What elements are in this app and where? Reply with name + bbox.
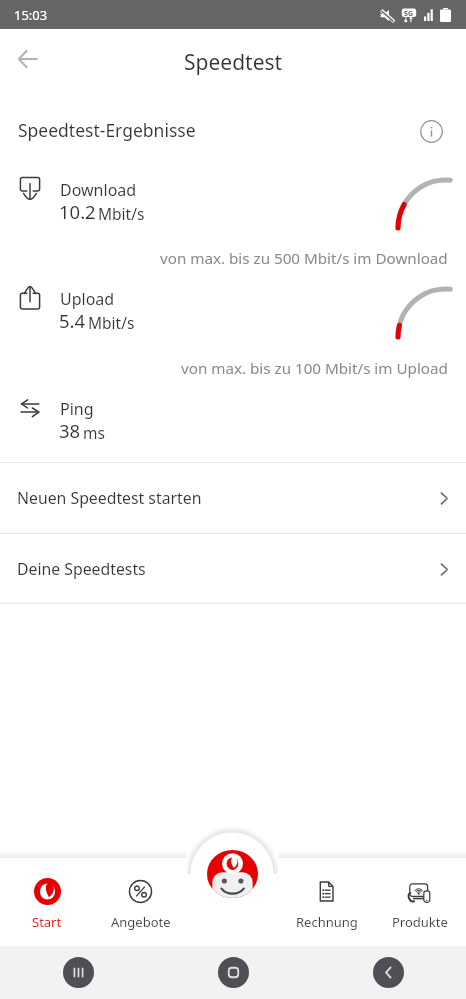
staticText: Speedtest xyxy=(184,48,283,77)
staticText: 10.2 xyxy=(59,199,96,224)
staticText: Deine Speedtests xyxy=(17,558,146,580)
staticText: Start xyxy=(32,913,62,931)
button[interactable]: Angebote xyxy=(94,858,187,946)
staticText: 5.4 xyxy=(59,308,86,333)
staticText: Mbit/s xyxy=(98,203,145,224)
button[interactable]: Back xyxy=(8,39,48,79)
button[interactable]: Home xyxy=(218,957,249,988)
staticText: Ping xyxy=(60,398,94,420)
staticText: 15:03 xyxy=(14,6,48,24)
staticText: Upload xyxy=(60,288,115,310)
staticText: Angebote xyxy=(111,913,171,931)
button[interactable]: Produkte xyxy=(373,858,466,946)
button[interactable]: Info xyxy=(414,114,448,148)
staticText: 5G xyxy=(404,9,414,19)
staticText: Rechnung xyxy=(296,913,358,931)
staticText: Speedtest-Ergebnisse xyxy=(18,118,196,142)
staticText: Download xyxy=(60,179,137,201)
staticText: Mbit/s xyxy=(88,312,135,333)
button[interactable]: Neuen Speedtest starten xyxy=(0,463,466,533)
staticText: ms xyxy=(83,422,105,443)
staticText: 38 xyxy=(59,418,81,443)
staticText: von max. bis zu 100 Mbit/s im Upload xyxy=(181,358,448,379)
staticText: Produkte xyxy=(392,913,448,931)
staticText: von max. bis zu 500 Mbit/s im Download xyxy=(160,248,448,269)
button[interactable]: TOBi Chat xyxy=(191,833,273,915)
button[interactable]: Rechnung xyxy=(280,858,373,946)
staticText: Neuen Speedtest starten xyxy=(17,487,202,509)
button[interactable]: Recent apps xyxy=(63,957,94,988)
button[interactable]: Deine Speedtests xyxy=(0,534,466,604)
button[interactable]: Start xyxy=(0,858,94,946)
button[interactable]: Back xyxy=(373,957,404,988)
